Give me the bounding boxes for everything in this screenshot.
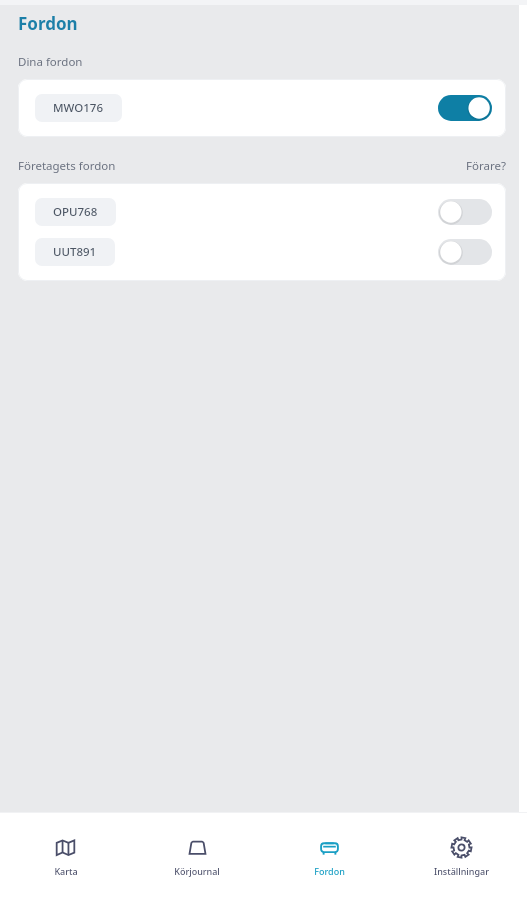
staticText: UUT891 xyxy=(53,244,97,260)
staticText: MWO176 xyxy=(53,100,104,116)
button[interactable]: Avaktiverad xyxy=(438,238,492,266)
staticText: Inställningar xyxy=(434,865,489,877)
staticText: Karta xyxy=(54,865,78,877)
staticText: Körjournal xyxy=(174,865,220,877)
button[interactable]: Karta xyxy=(0,827,131,887)
staticText: Företagets fordon xyxy=(18,158,116,174)
button[interactable]: Inställningar xyxy=(395,827,527,887)
button[interactable]: Körjournal xyxy=(131,827,263,887)
staticText: OPU768 xyxy=(53,204,98,220)
button[interactable]: Fordon xyxy=(263,827,395,887)
button[interactable]: OPU768 xyxy=(18,195,506,229)
staticText: Fordon xyxy=(314,865,345,877)
staticText: Fordon xyxy=(18,12,78,35)
staticText: Dina fordon xyxy=(18,54,83,70)
button[interactable]: Aktiverad xyxy=(438,94,492,122)
staticText: Förare? xyxy=(466,158,506,174)
button[interactable]: Avaktiverad xyxy=(438,198,492,226)
button[interactable]: UUT891 xyxy=(18,235,506,269)
button[interactable]: MWO176 xyxy=(18,91,506,125)
